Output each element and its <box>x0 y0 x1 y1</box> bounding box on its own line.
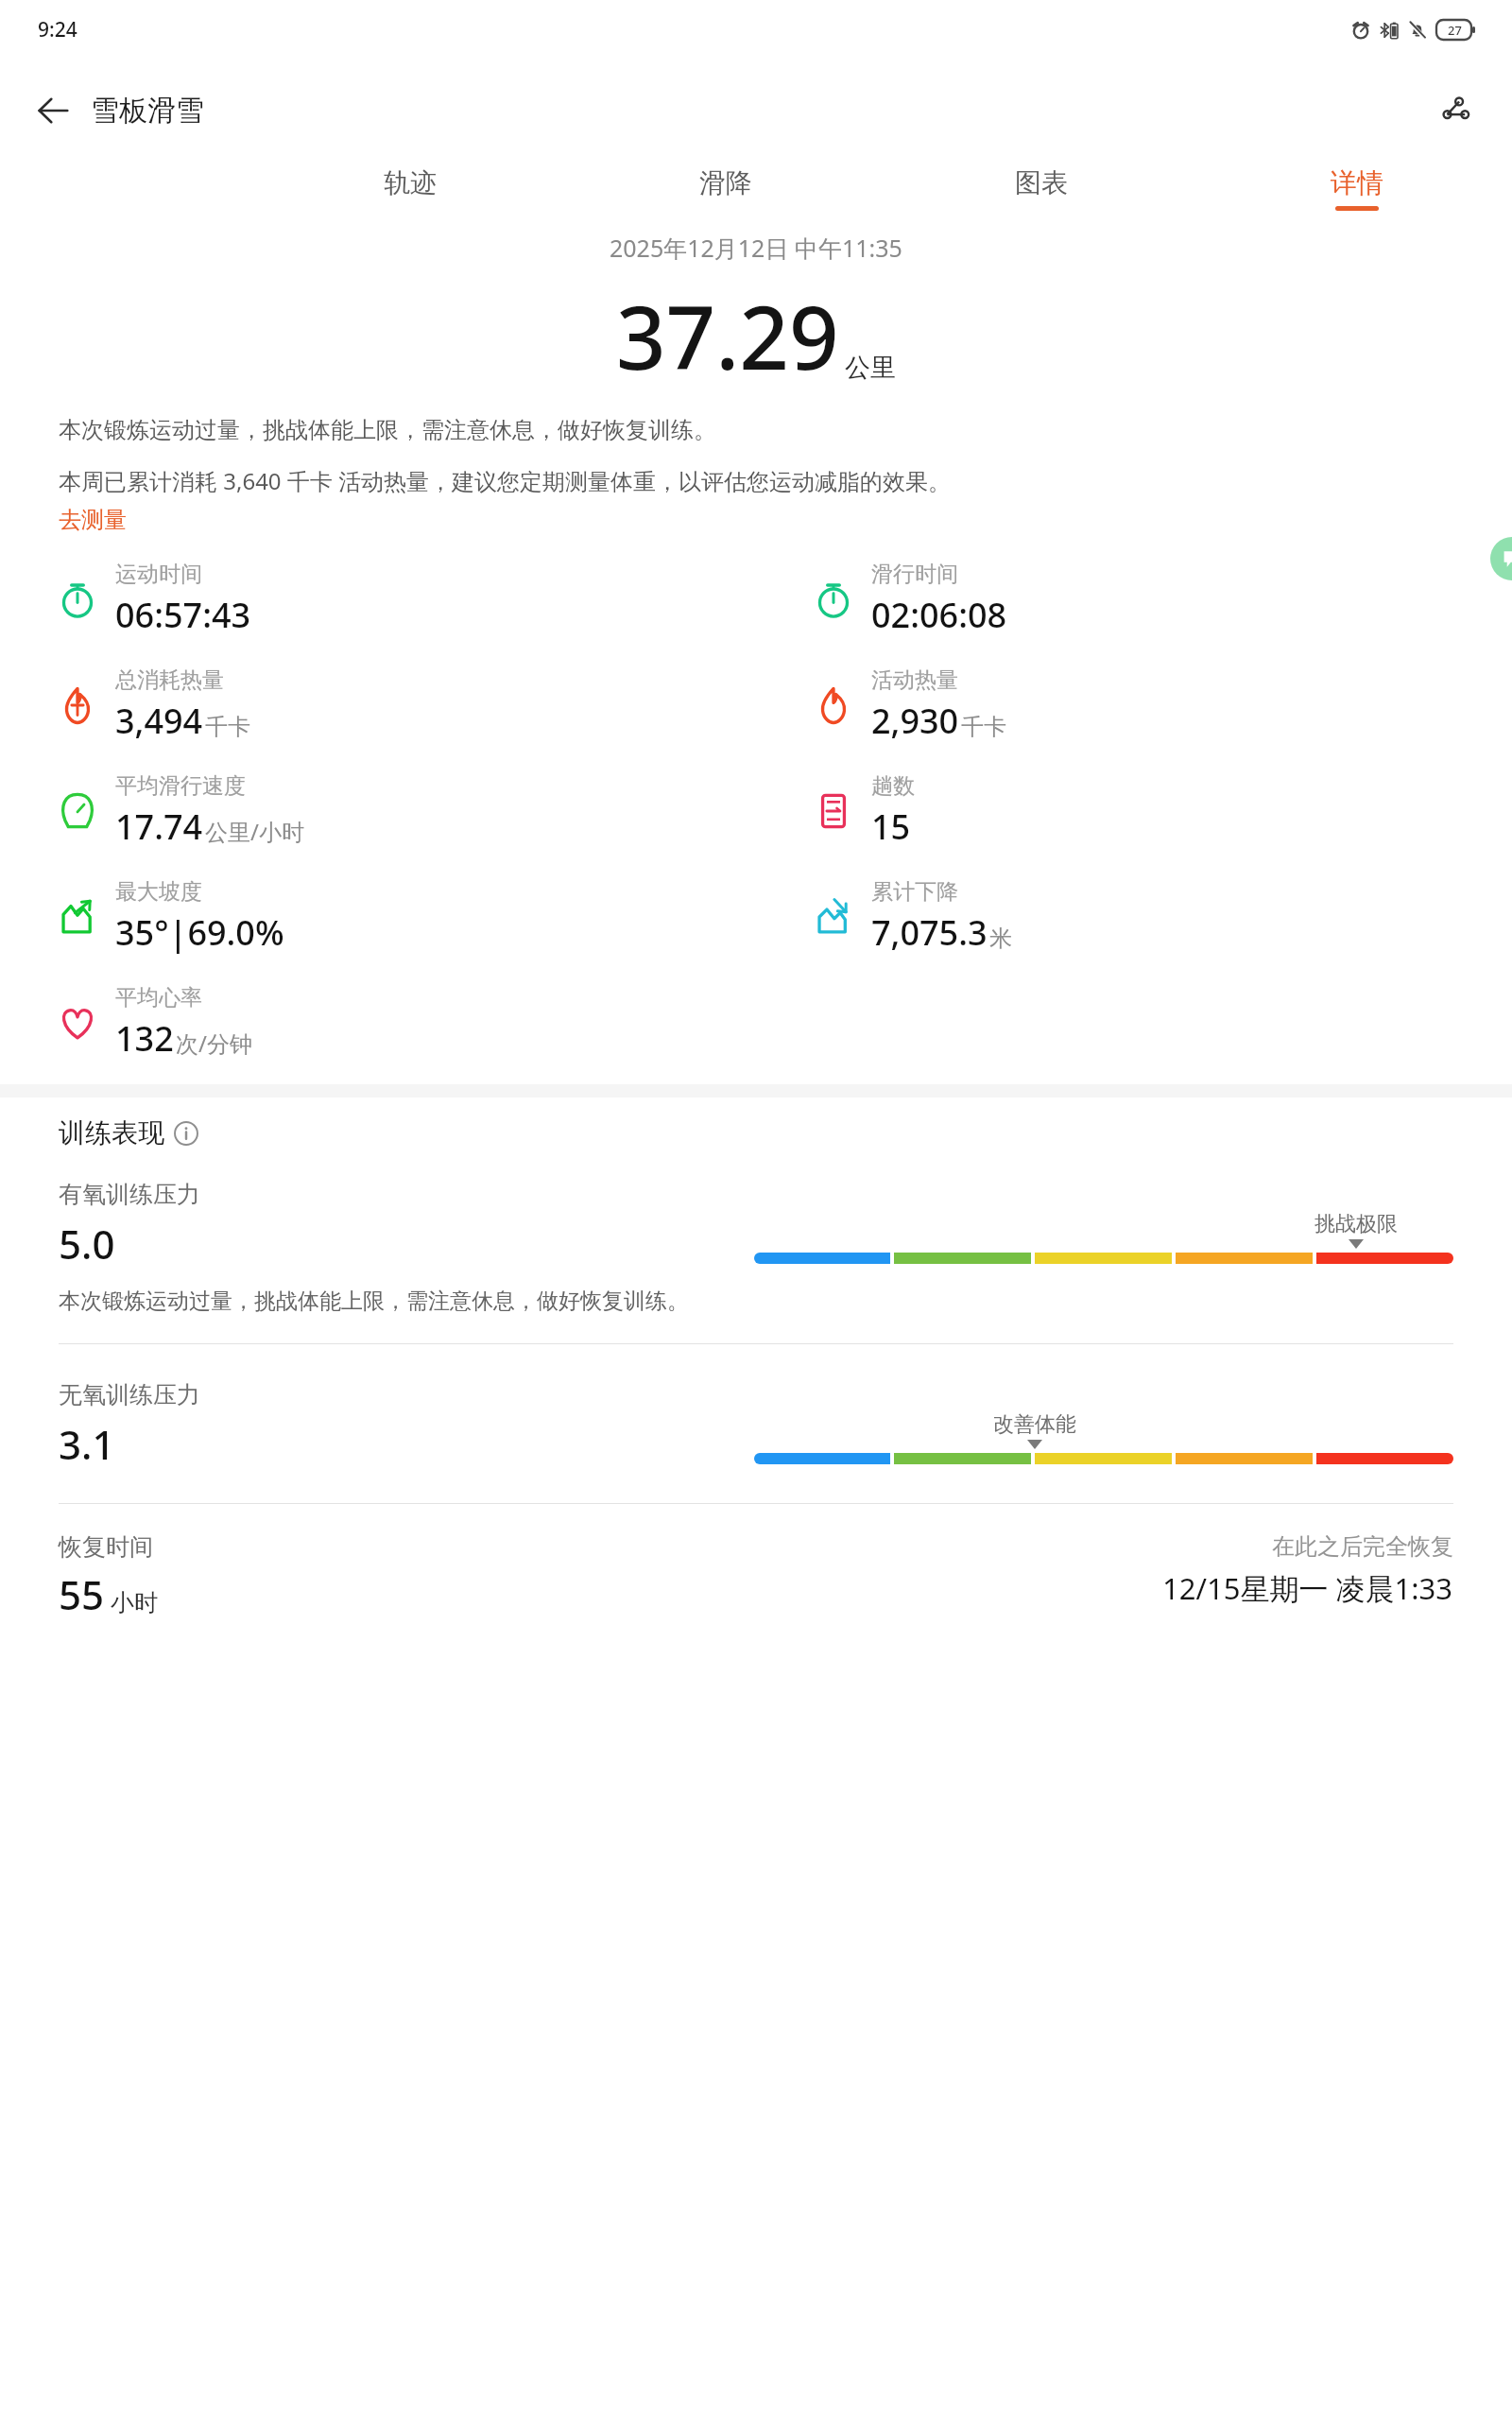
staticText: 35°|69.0% <box>115 909 284 956</box>
button[interactable]: 训练表现 <box>59 1116 198 1149</box>
staticText: 本周已累计消耗 3,640 千卡 活动热量，建议您定期测量体重，以评估您运动减脂… <box>59 465 952 496</box>
staticText: 本次锻炼运动过量，挑战体能上限，需注意休息，做好恢复训练。 <box>59 1288 689 1315</box>
button[interactable]: 滑行时间 <box>756 561 1512 638</box>
button[interactable]: 平均滑行速度 <box>0 772 756 850</box>
button[interactable]: 滑降 <box>694 163 758 215</box>
staticText: 本次锻炼运动过量，挑战体能上限，需注意休息，做好恢复训练。 <box>59 416 716 444</box>
staticText: 7,075.3 <box>871 909 988 956</box>
staticText: 轨迹 <box>384 166 437 199</box>
button[interactable]: Back <box>21 78 85 143</box>
staticText: 公里/小时 <box>205 816 304 847</box>
button[interactable]: 详情 <box>1325 163 1389 215</box>
button[interactable]: 运动时间 <box>0 561 756 638</box>
staticText: 挑战极限 <box>1314 1211 1398 1237</box>
staticText: 2,930 <box>871 698 959 744</box>
staticText: 15 <box>871 804 911 850</box>
staticText: 雪板滑雪 <box>91 93 204 129</box>
staticText: 小时 <box>111 1588 158 1617</box>
staticText: 次/分钟 <box>176 1028 252 1059</box>
staticText: 总消耗热量 <box>115 666 224 694</box>
staticText: 平均心率 <box>115 984 202 1011</box>
staticText: 滑行时间 <box>871 561 958 588</box>
staticText: 2025年12月12日 中午11:35 <box>610 232 902 264</box>
staticText: 有氧训练压力 <box>59 1180 200 1209</box>
staticText: 37.29 <box>616 277 839 395</box>
button[interactable]: 总消耗热量 <box>0 666 756 744</box>
button[interactable]: 去测量 <box>59 506 127 534</box>
button[interactable]: 累计下降 <box>756 878 1512 956</box>
staticText: 12/15星期一 凌晨1:33 <box>1162 1568 1453 1608</box>
staticText: 滑降 <box>699 166 752 199</box>
staticText: 55 <box>59 1567 105 1621</box>
button[interactable]: 轨迹 <box>378 163 442 215</box>
button[interactable]: 趟数 <box>756 772 1512 850</box>
staticText: 去测量 <box>59 506 127 534</box>
staticText: 累计下降 <box>871 878 958 906</box>
staticText: 千卡 <box>961 713 1006 741</box>
staticText: 132 <box>115 1015 174 1062</box>
staticText: 17.74 <box>115 804 203 850</box>
staticText: 3,494 <box>115 698 203 744</box>
staticText: 在此之后完全恢复 <box>1272 1532 1453 1561</box>
staticText: 运动时间 <box>115 561 202 588</box>
staticText: 最大坡度 <box>115 878 202 906</box>
staticText: 改善体能 <box>993 1411 1076 1438</box>
staticText: 27 <box>1448 22 1462 39</box>
staticText: 恢复时间 <box>59 1532 153 1562</box>
button[interactable]: 最大坡度 <box>0 878 756 956</box>
staticText: 趟数 <box>871 772 915 800</box>
button[interactable]: Share <box>1425 80 1486 141</box>
staticText: 02:06:08 <box>871 592 1007 638</box>
staticText: 详情 <box>1331 166 1383 199</box>
staticText: 活动热量 <box>871 666 958 694</box>
button[interactable]: 图表 <box>1009 163 1074 215</box>
staticText: 5.0 <box>59 1217 115 1270</box>
button[interactable]: 平均心率 <box>0 984 756 1062</box>
staticText: 公里 <box>845 352 896 384</box>
button[interactable]: Assistant <box>1490 537 1512 580</box>
staticText: 千卡 <box>205 713 250 741</box>
staticText: 训练表现 <box>59 1116 164 1149</box>
staticText: 06:57:43 <box>115 592 251 638</box>
staticText: 米 <box>989 925 1012 953</box>
button[interactable]: 活动热量 <box>756 666 1512 744</box>
staticText: 图表 <box>1015 166 1068 199</box>
staticText: 3.1 <box>59 1417 115 1471</box>
staticText: 无氧训练压力 <box>59 1380 200 1409</box>
staticText: 平均滑行速度 <box>115 772 246 800</box>
staticText: 9:24 <box>38 16 77 43</box>
